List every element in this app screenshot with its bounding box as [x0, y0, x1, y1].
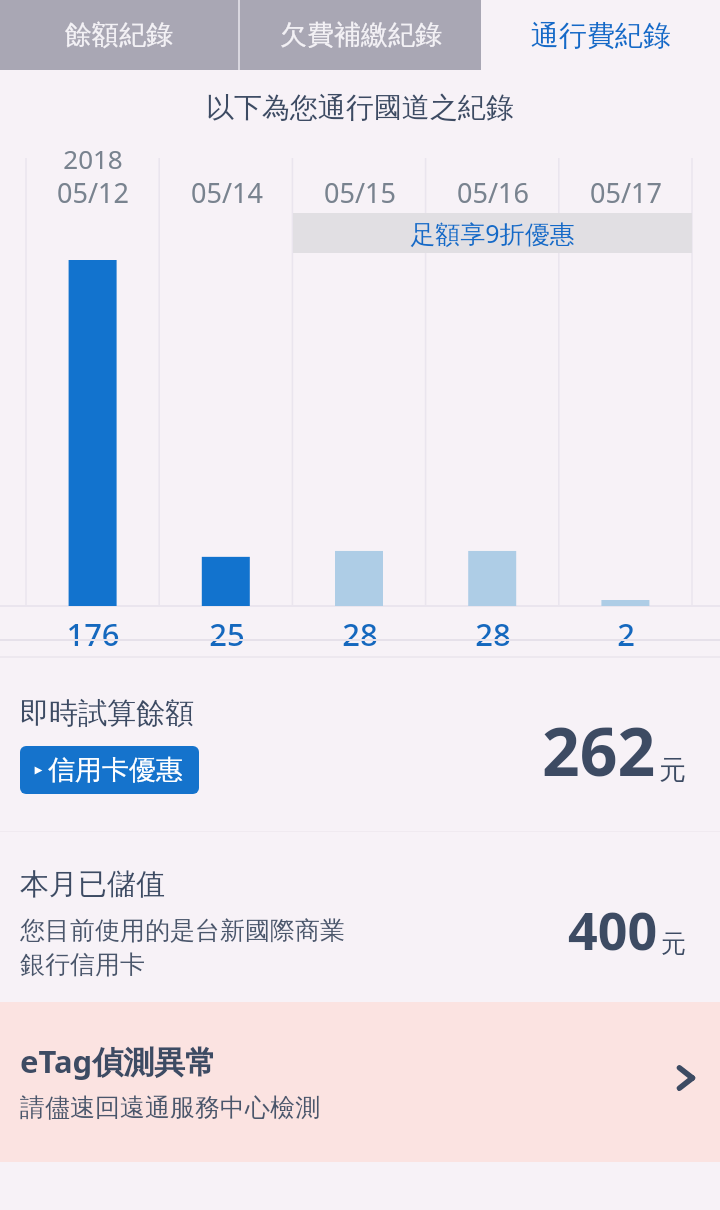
- staticText: 本月已儲值: [20, 866, 165, 903]
- staticText: 您目前使用的是台新國際商業 銀行信用卡: [20, 915, 345, 981]
- staticText: 05/14: [191, 174, 263, 211]
- staticText: 2: [617, 613, 635, 655]
- staticText: 05/15: [324, 174, 396, 211]
- staticText: 176: [66, 613, 120, 655]
- staticText: 2018: [63, 141, 123, 176]
- staticText: 信用卡優惠: [48, 753, 183, 787]
- button[interactable]: 本月已儲值: [0, 832, 720, 1002]
- staticText: 400: [568, 894, 658, 965]
- staticText: 元: [661, 928, 686, 959]
- other: 查看 eTag 偵測異常詳情: [660, 1054, 708, 1102]
- staticText: 262: [542, 705, 656, 795]
- staticText: 28: [342, 613, 378, 655]
- staticText: 元: [659, 753, 686, 787]
- staticText: eTag偵測異常: [20, 1040, 217, 1082]
- staticText: 05/16: [457, 174, 529, 211]
- staticText: 05/17: [590, 174, 662, 211]
- staticText: 通行費紀錄: [531, 18, 671, 53]
- button[interactable]: 欠費補繳紀錄: [240, 0, 481, 70]
- button[interactable]: eTag偵測異常: [0, 1002, 720, 1162]
- staticText: 欠費補繳紀錄: [280, 18, 442, 52]
- button[interactable]: 即時試算餘額: [0, 641, 720, 831]
- button[interactable]: 餘額紀錄: [0, 0, 238, 70]
- button[interactable]: 足額享9折優惠: [293, 213, 692, 253]
- button[interactable]: 通行費紀錄: [481, 0, 720, 70]
- staticText: 05/12: [57, 174, 129, 211]
- staticText: 餘額紀錄: [65, 18, 173, 52]
- staticText: 即時試算餘額: [20, 695, 194, 732]
- staticText: 25: [209, 613, 245, 655]
- staticText: 28: [475, 613, 511, 655]
- button[interactable]: 信用卡優惠: [20, 746, 199, 794]
- staticText: 以下為您通行國道之紀錄: [0, 90, 720, 125]
- staticText: 足額享9折優惠: [410, 216, 575, 250]
- staticText: 請儘速回遠通服務中心檢測: [20, 1092, 320, 1123]
